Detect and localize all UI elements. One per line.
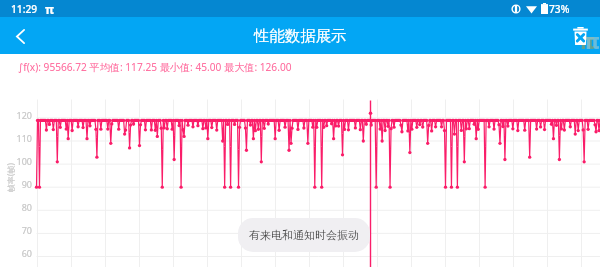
staticText: 80	[0, 201, 32, 213]
button[interactable]: 有来电和通知时会振动	[238, 218, 370, 252]
staticText: π	[45, 1, 54, 17]
staticText: 110	[0, 132, 32, 144]
staticText: 70	[0, 224, 32, 236]
staticText: 11:29	[11, 2, 38, 16]
staticText: ∫f(x): 95566.72 平均值: 117.25 最小值: 45.00 最…	[18, 60, 292, 74]
staticText: π	[579, 27, 595, 53]
staticText: 有来电和通知时会振动	[249, 228, 359, 242]
button[interactable]: Delete	[568, 21, 593, 51]
staticText: 60	[0, 247, 32, 259]
staticText: 100	[0, 155, 32, 167]
staticText: 90	[0, 178, 32, 190]
staticText: 帧率(帧)	[5, 163, 16, 192]
staticText: 73%	[549, 2, 570, 16]
staticText: 性能数据展示	[254, 26, 347, 45]
staticText: 120	[0, 109, 32, 121]
button[interactable]: Back	[2, 18, 38, 54]
staticText: π	[584, 27, 600, 53]
